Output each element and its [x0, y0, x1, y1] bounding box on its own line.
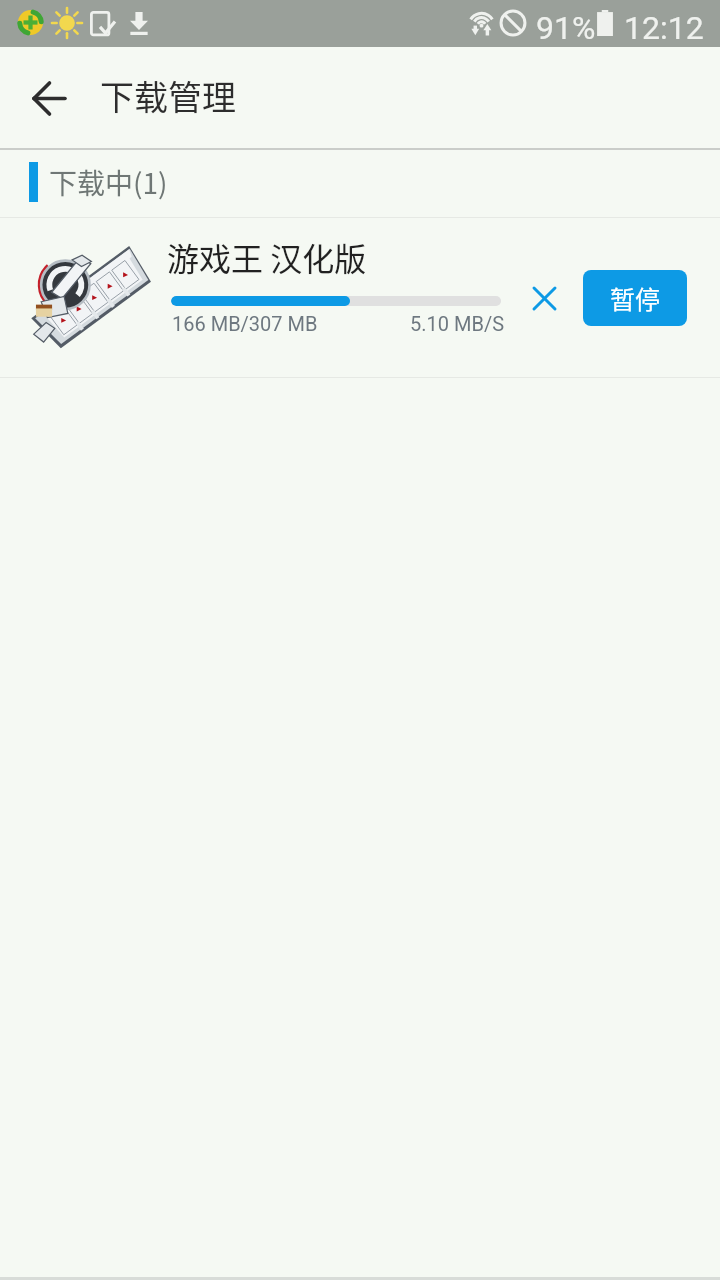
staticText: 5.10 MB/S	[410, 312, 505, 335]
staticText: 166 MB/307 MB	[172, 312, 318, 335]
button[interactable]: 游戏王 汉化版	[0, 218, 720, 378]
staticText: 游戏王 汉化版	[167, 234, 367, 280]
staticText: 91%	[536, 9, 596, 47]
button[interactable]: 暂停	[583, 270, 687, 326]
staticText: 12:12	[624, 9, 704, 47]
staticText: 下载管理	[100, 71, 236, 120]
staticText: 暂停	[610, 280, 661, 316]
button[interactable]: Back	[16, 63, 82, 129]
button[interactable]: Cancel download	[517, 271, 571, 325]
staticText: 下载中(1)	[49, 162, 168, 203]
